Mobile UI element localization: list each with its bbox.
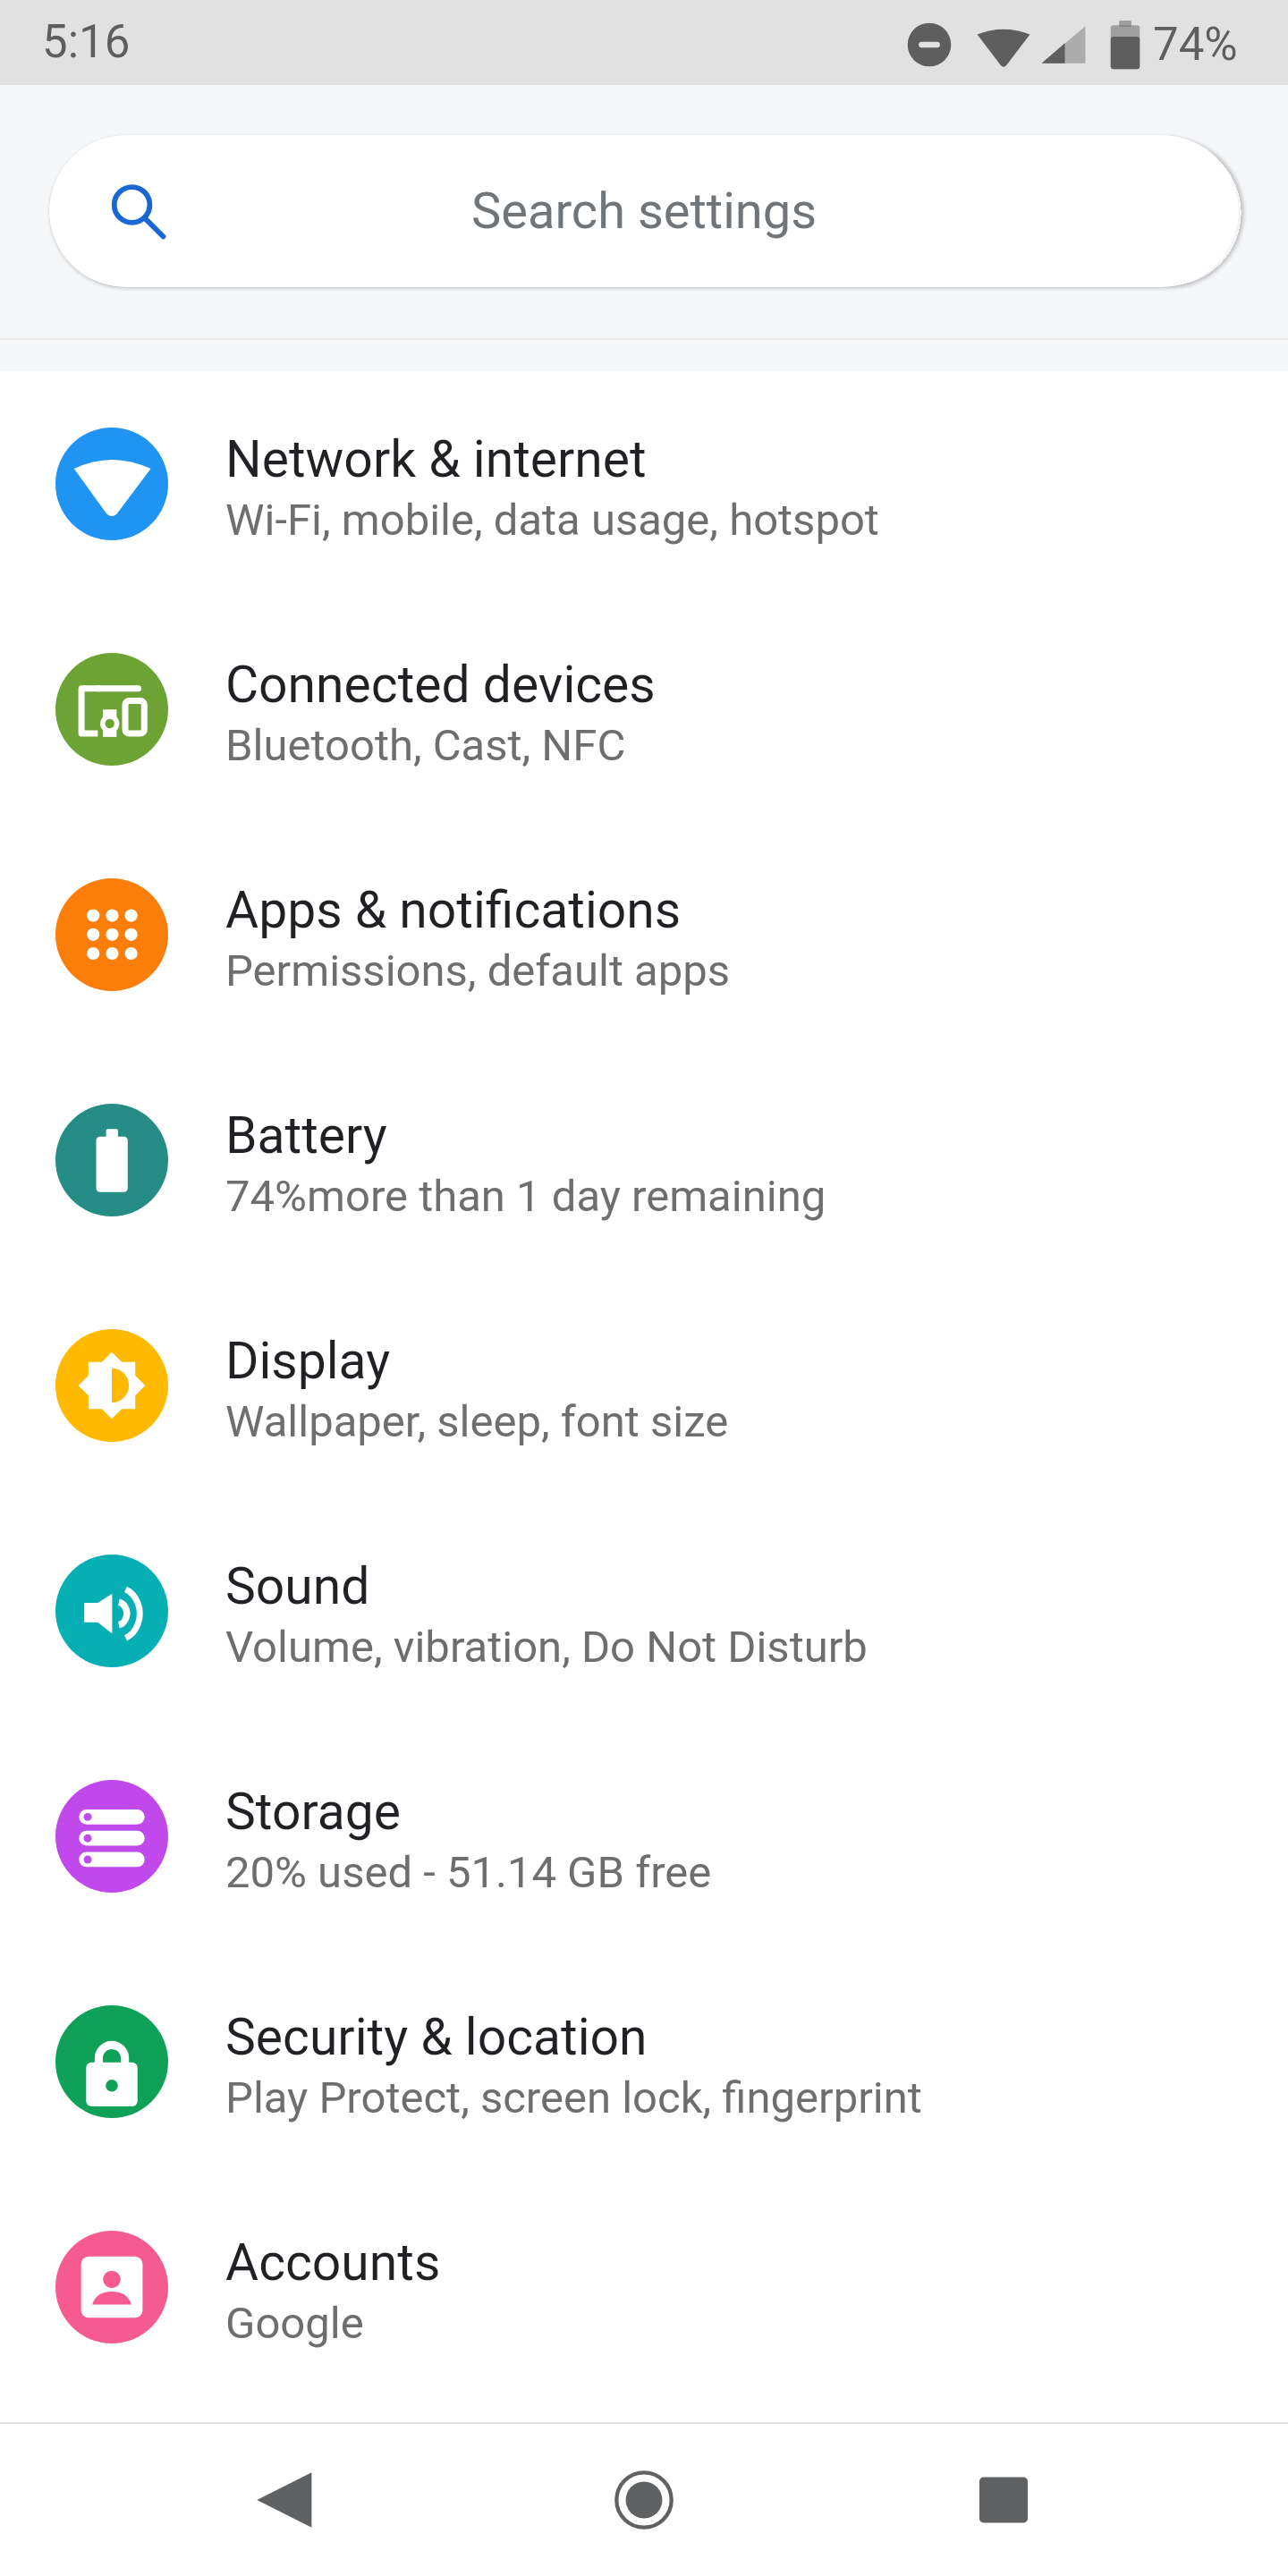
staticText: 20% used - 51.14 GB free [225, 1847, 712, 1898]
staticText: Network & internet [225, 429, 647, 489]
button[interactable]: Apps & notifications [0, 822, 1288, 1047]
staticText: Storage [225, 1782, 401, 1842]
button[interactable]: Home [569, 2425, 719, 2575]
staticText: Permissions, default apps [225, 945, 731, 996]
staticText: 5:16 [42, 15, 131, 69]
staticText: Wi-Fi, mobile, data usage, hotspot [225, 495, 879, 546]
staticText: Wallpaper, sleep, font size [225, 1396, 729, 1447]
button[interactable]: Battery [0, 1047, 1288, 1273]
button[interactable]: Display [0, 1273, 1288, 1498]
button[interactable]: Back [209, 2425, 360, 2575]
staticText: Sound [225, 1556, 370, 1616]
button[interactable]: Storage [0, 1724, 1288, 1949]
staticText: Display [225, 1331, 391, 1391]
button[interactable]: Security & location [0, 1949, 1288, 2174]
button[interactable]: Search settings [49, 135, 1239, 287]
button[interactable]: Recent apps [928, 2425, 1079, 2575]
staticText: Search settings [471, 182, 818, 241]
staticText: 74%more than 1 day remaining [225, 1171, 826, 1222]
staticText: Connected devices [225, 655, 656, 715]
staticText: Bluetooth, Cast, NFC [225, 720, 626, 771]
staticText: Apps & notifications [225, 880, 682, 940]
button[interactable]: Sound [0, 1498, 1288, 1724]
button[interactable]: Accounts [0, 2174, 1288, 2400]
staticText: Accounts [225, 2233, 441, 2292]
staticText: Play Protect, screen lock, fingerprint [225, 2072, 922, 2123]
staticText: Security & location [225, 2007, 648, 2067]
button[interactable]: Connected devices [0, 597, 1288, 822]
staticText: Volume, vibration, Do Not Disturb [225, 1622, 868, 1673]
staticText: 74% [1153, 18, 1238, 72]
staticText: Battery [225, 1106, 387, 1165]
staticText: Google [225, 2298, 364, 2349]
button[interactable]: Network & internet [0, 371, 1288, 597]
